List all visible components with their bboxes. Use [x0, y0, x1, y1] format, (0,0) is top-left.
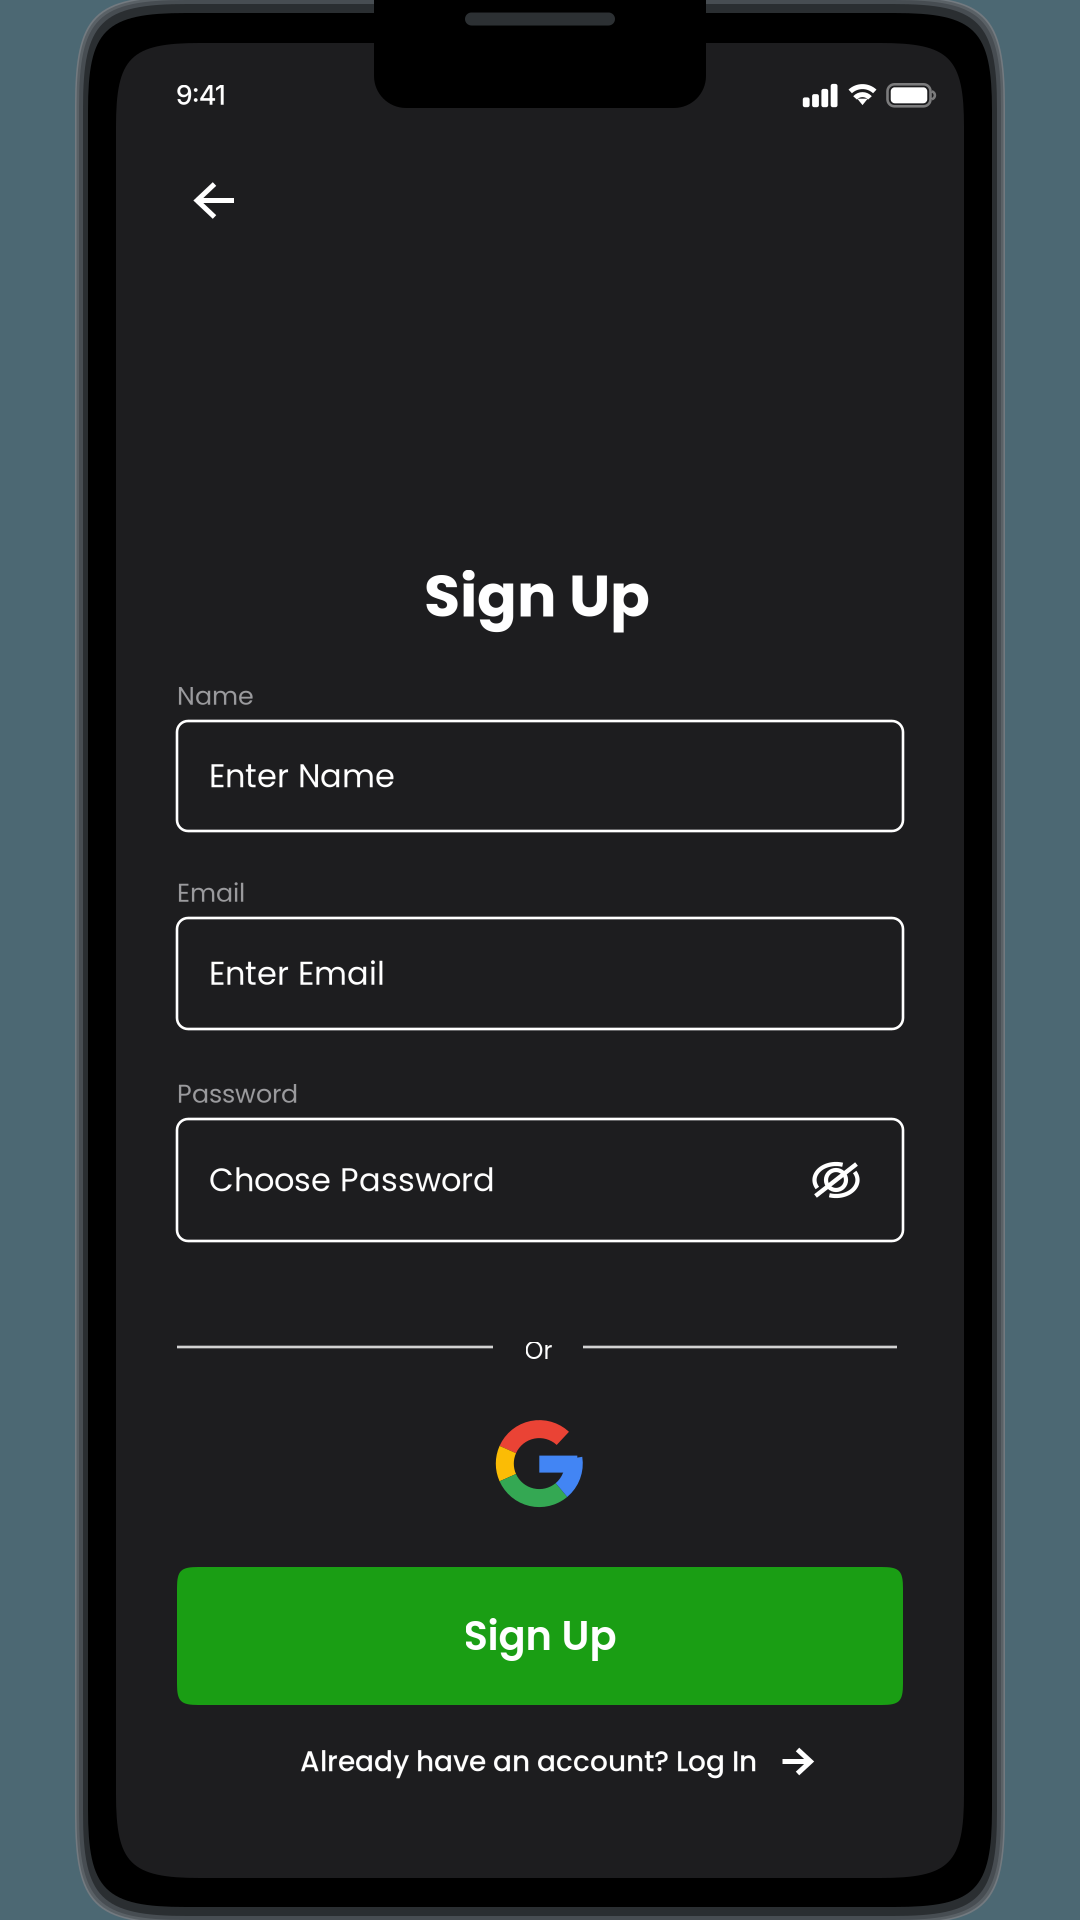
staticText: Already have an account? Log In — [300, 1742, 757, 1781]
staticText: Enter Email — [209, 951, 385, 996]
staticText: 9:41 — [176, 79, 226, 111]
button[interactable]: Sign Up — [177, 1567, 903, 1705]
staticText: Choose Password — [209, 1158, 495, 1202]
staticText: Sign Up — [424, 555, 650, 637]
button[interactable]: Already have an account? Log In — [288, 1730, 825, 1793]
staticText: Password — [177, 1076, 298, 1112]
staticText: Sign Up — [463, 1608, 616, 1664]
staticText: Email — [177, 875, 245, 911]
button[interactable]: Back — [170, 157, 260, 243]
staticText: Or — [524, 1334, 552, 1367]
button[interactable]: Sign up with Google — [479, 1404, 599, 1524]
staticText: Enter Name — [209, 754, 395, 798]
button[interactable]: Show password — [800, 1149, 872, 1210]
staticText: Name — [177, 678, 254, 714]
